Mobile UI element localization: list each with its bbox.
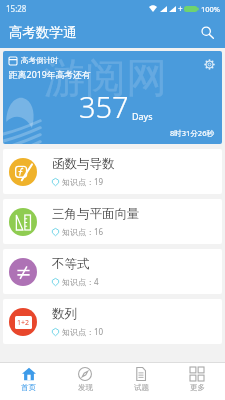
button[interactable]: 函数与导数 [3, 149, 222, 194]
button[interactable]: 游阅网 [3, 51, 222, 144]
staticText: + [178, 3, 183, 14]
staticText: 知识点：19 [62, 176, 104, 187]
staticText: 三角与平面向量 [52, 206, 140, 222]
staticText: 不等式 [52, 256, 90, 272]
staticText: 函数与导数 [52, 156, 115, 172]
staticText: 100% [201, 4, 221, 14]
button[interactable]: 发现 [57, 363, 113, 400]
staticText: 发现 [78, 383, 93, 392]
button[interactable]: 三角与平面向量 [3, 199, 222, 244]
staticText: 更多 [190, 383, 205, 392]
button[interactable]: 首页 [0, 363, 57, 400]
button[interactable]: Settings [201, 56, 217, 72]
staticText: 知识点：4 [62, 276, 99, 287]
staticText: 知识点：16 [62, 226, 104, 237]
staticText: Days [132, 110, 153, 122]
button[interactable]: 试题 [113, 363, 169, 400]
staticText: 1+2 [17, 318, 30, 328]
staticText: 357 [79, 87, 129, 126]
staticText: 数列 [52, 306, 77, 322]
staticText: 试题 [134, 383, 149, 392]
button[interactable]: 不等式 [3, 249, 222, 294]
staticText: 高考倒计时 [21, 56, 59, 65]
button[interactable]: 更多 [169, 363, 225, 400]
staticText: 距离2019年高考还有 [9, 69, 91, 81]
staticText: 高考数学通 [9, 24, 77, 41]
button[interactable]: 1+2 [3, 299, 222, 344]
button[interactable]: Search [195, 20, 219, 44]
staticText: 8时31分26秒 [170, 128, 214, 138]
staticText: 知识点：10 [62, 326, 104, 337]
staticText: 游阅网 [44, 53, 167, 105]
staticText: 首页 [21, 383, 36, 392]
staticText: 15:28 [6, 3, 27, 14]
